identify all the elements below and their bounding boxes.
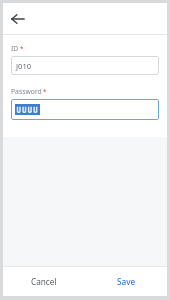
- staticText: Password: [11, 87, 42, 96]
- staticText: ID: [11, 44, 19, 53]
- button[interactable]: Back: [7, 8, 29, 30]
- staticText: *: [20, 44, 24, 52]
- staticText: Save: [117, 276, 136, 287]
- button[interactable]: Save: [85, 267, 167, 296]
- button[interactable]: [11, 99, 159, 120]
- button[interactable]: J010: [11, 56, 159, 75]
- staticText: Cancel: [31, 276, 57, 287]
- staticText: J010: [16, 61, 32, 71]
- button[interactable]: Cancel: [3, 267, 85, 296]
- staticText: *: [43, 87, 47, 95]
